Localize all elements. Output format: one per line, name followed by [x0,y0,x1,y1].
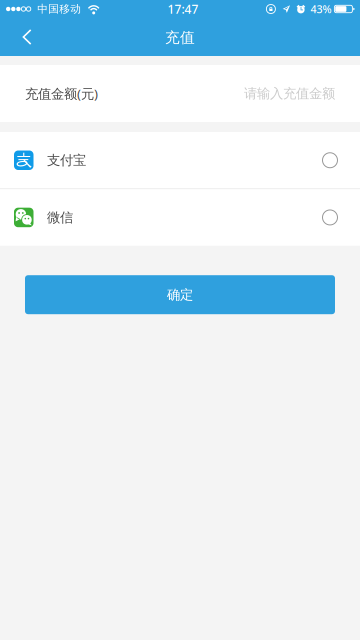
staticText: 确定 [167,286,193,303]
button[interactable]: 支付宝 [0,132,360,188]
staticText: 充值金额(元) [25,85,98,102]
staticText: 中国移动 [37,2,81,15]
staticText: 43% [310,2,331,16]
staticText: 微信 [47,209,73,226]
staticText: 支付宝 [47,152,86,168]
button[interactable]: Back [0,18,54,56]
button[interactable]: 微信 [0,189,360,246]
staticText: 17:47 [168,1,199,17]
staticText: 充值 [165,28,195,46]
staticText: 请输入充值金额 [244,85,335,102]
button[interactable]: 确定 [25,275,335,314]
